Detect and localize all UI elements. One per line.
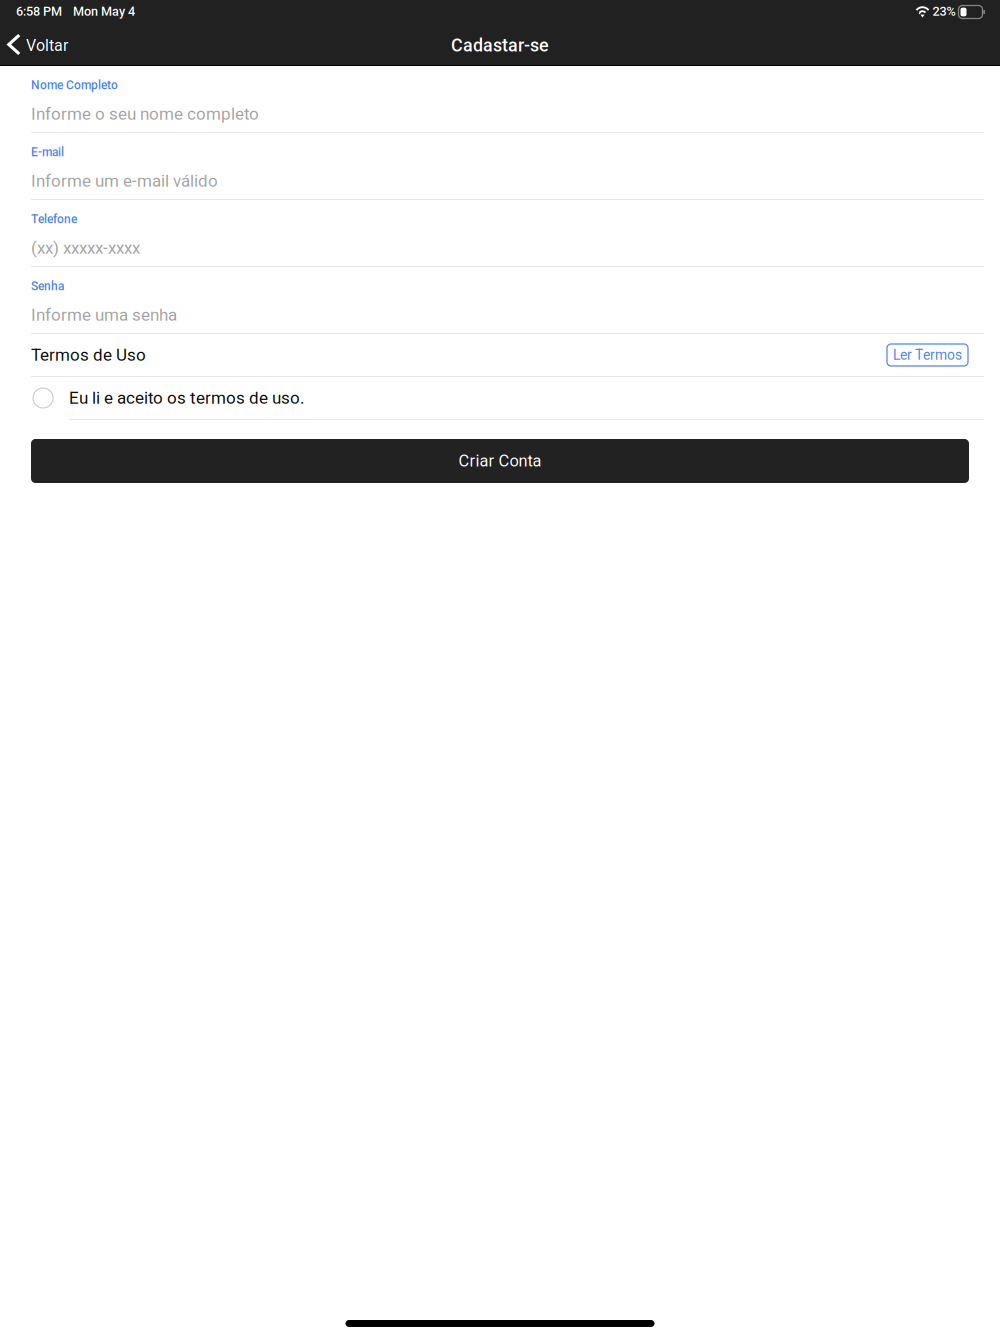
- staticText: 23%: [932, 4, 955, 19]
- staticText: Informe uma senha: [31, 305, 177, 325]
- staticText: Mon May 4: [73, 4, 135, 19]
- staticText: Cadastar-se: [451, 35, 549, 56]
- button[interactable]: Eu li e aceito os termos de uso.: [0, 377, 1000, 419]
- button[interactable]: Senha: [0, 267, 1000, 334]
- button[interactable]: Criar Conta: [0, 439, 1000, 483]
- button[interactable]: Voltar: [0, 26, 76, 65]
- button[interactable]: Nome Completo: [0, 66, 1000, 133]
- button[interactable]: Ler Termos: [887, 344, 968, 366]
- staticText: Informe um e-mail válido: [31, 171, 218, 191]
- button[interactable]: Telefone: [0, 200, 1000, 267]
- staticText: Termos de Uso: [31, 345, 146, 365]
- staticText: Senha: [31, 279, 64, 293]
- staticText: Informe o seu nome completo: [31, 104, 259, 124]
- button[interactable]: E-mail: [0, 133, 1000, 200]
- staticText: (xx) xxxxx-xxxx: [31, 238, 140, 258]
- staticText: Eu li e aceito os termos de uso.: [69, 388, 304, 408]
- staticText: Ler Termos: [893, 347, 962, 363]
- staticText: Nome Completo: [31, 78, 118, 92]
- staticText: 6:58 PM: [16, 4, 62, 19]
- staticText: Voltar: [26, 36, 68, 55]
- staticText: E-mail: [31, 145, 64, 159]
- staticText: Telefone: [31, 212, 77, 226]
- staticText: Criar Conta: [458, 451, 541, 471]
